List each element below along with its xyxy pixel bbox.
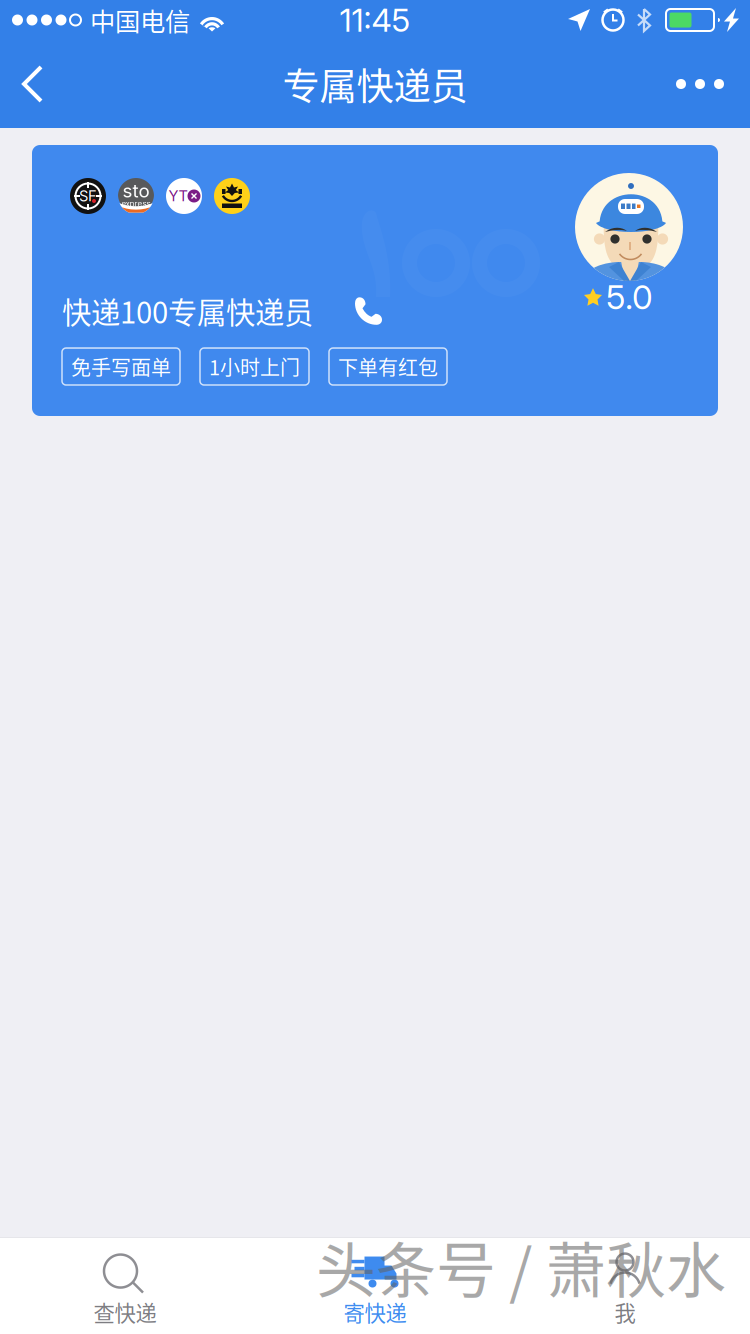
staticText: 寄快递	[343, 1297, 406, 1327]
button[interactable]: 拨打电话	[355, 296, 382, 326]
staticText: 下单有红包	[338, 352, 438, 381]
button[interactable]: 更多	[650, 51, 750, 117]
button[interactable]: 下单有红包	[329, 348, 447, 385]
staticText: 头条号 / 萧秋水	[316, 1223, 726, 1310]
staticText: 免手写面单	[71, 352, 171, 381]
staticText: 我	[614, 1297, 635, 1327]
staticText: YT	[168, 187, 187, 205]
button[interactable]: 寄快递	[250, 1237, 500, 1334]
staticText: sto	[122, 179, 149, 202]
staticText: SF	[79, 187, 97, 205]
staticText: 1小时上门	[209, 352, 300, 381]
staticText: 11:45	[339, 1, 410, 39]
button[interactable]: 返回	[0, 42, 69, 126]
staticText: 快递100专属快递员	[62, 290, 313, 332]
staticText: express	[121, 199, 150, 209]
button[interactable]: 查快递	[0, 1237, 250, 1334]
staticText: 5.0	[606, 277, 653, 317]
staticText: 查快递	[93, 1297, 156, 1327]
staticText: 中国电信	[90, 2, 190, 38]
staticText: 专属快递员	[282, 57, 467, 111]
button[interactable]: 1小时上门	[200, 348, 309, 385]
button[interactable]: 免手写面单	[62, 348, 180, 385]
button[interactable]: 专属快递员 评分5.0	[575, 145, 718, 317]
button[interactable]: 我	[500, 1237, 750, 1334]
